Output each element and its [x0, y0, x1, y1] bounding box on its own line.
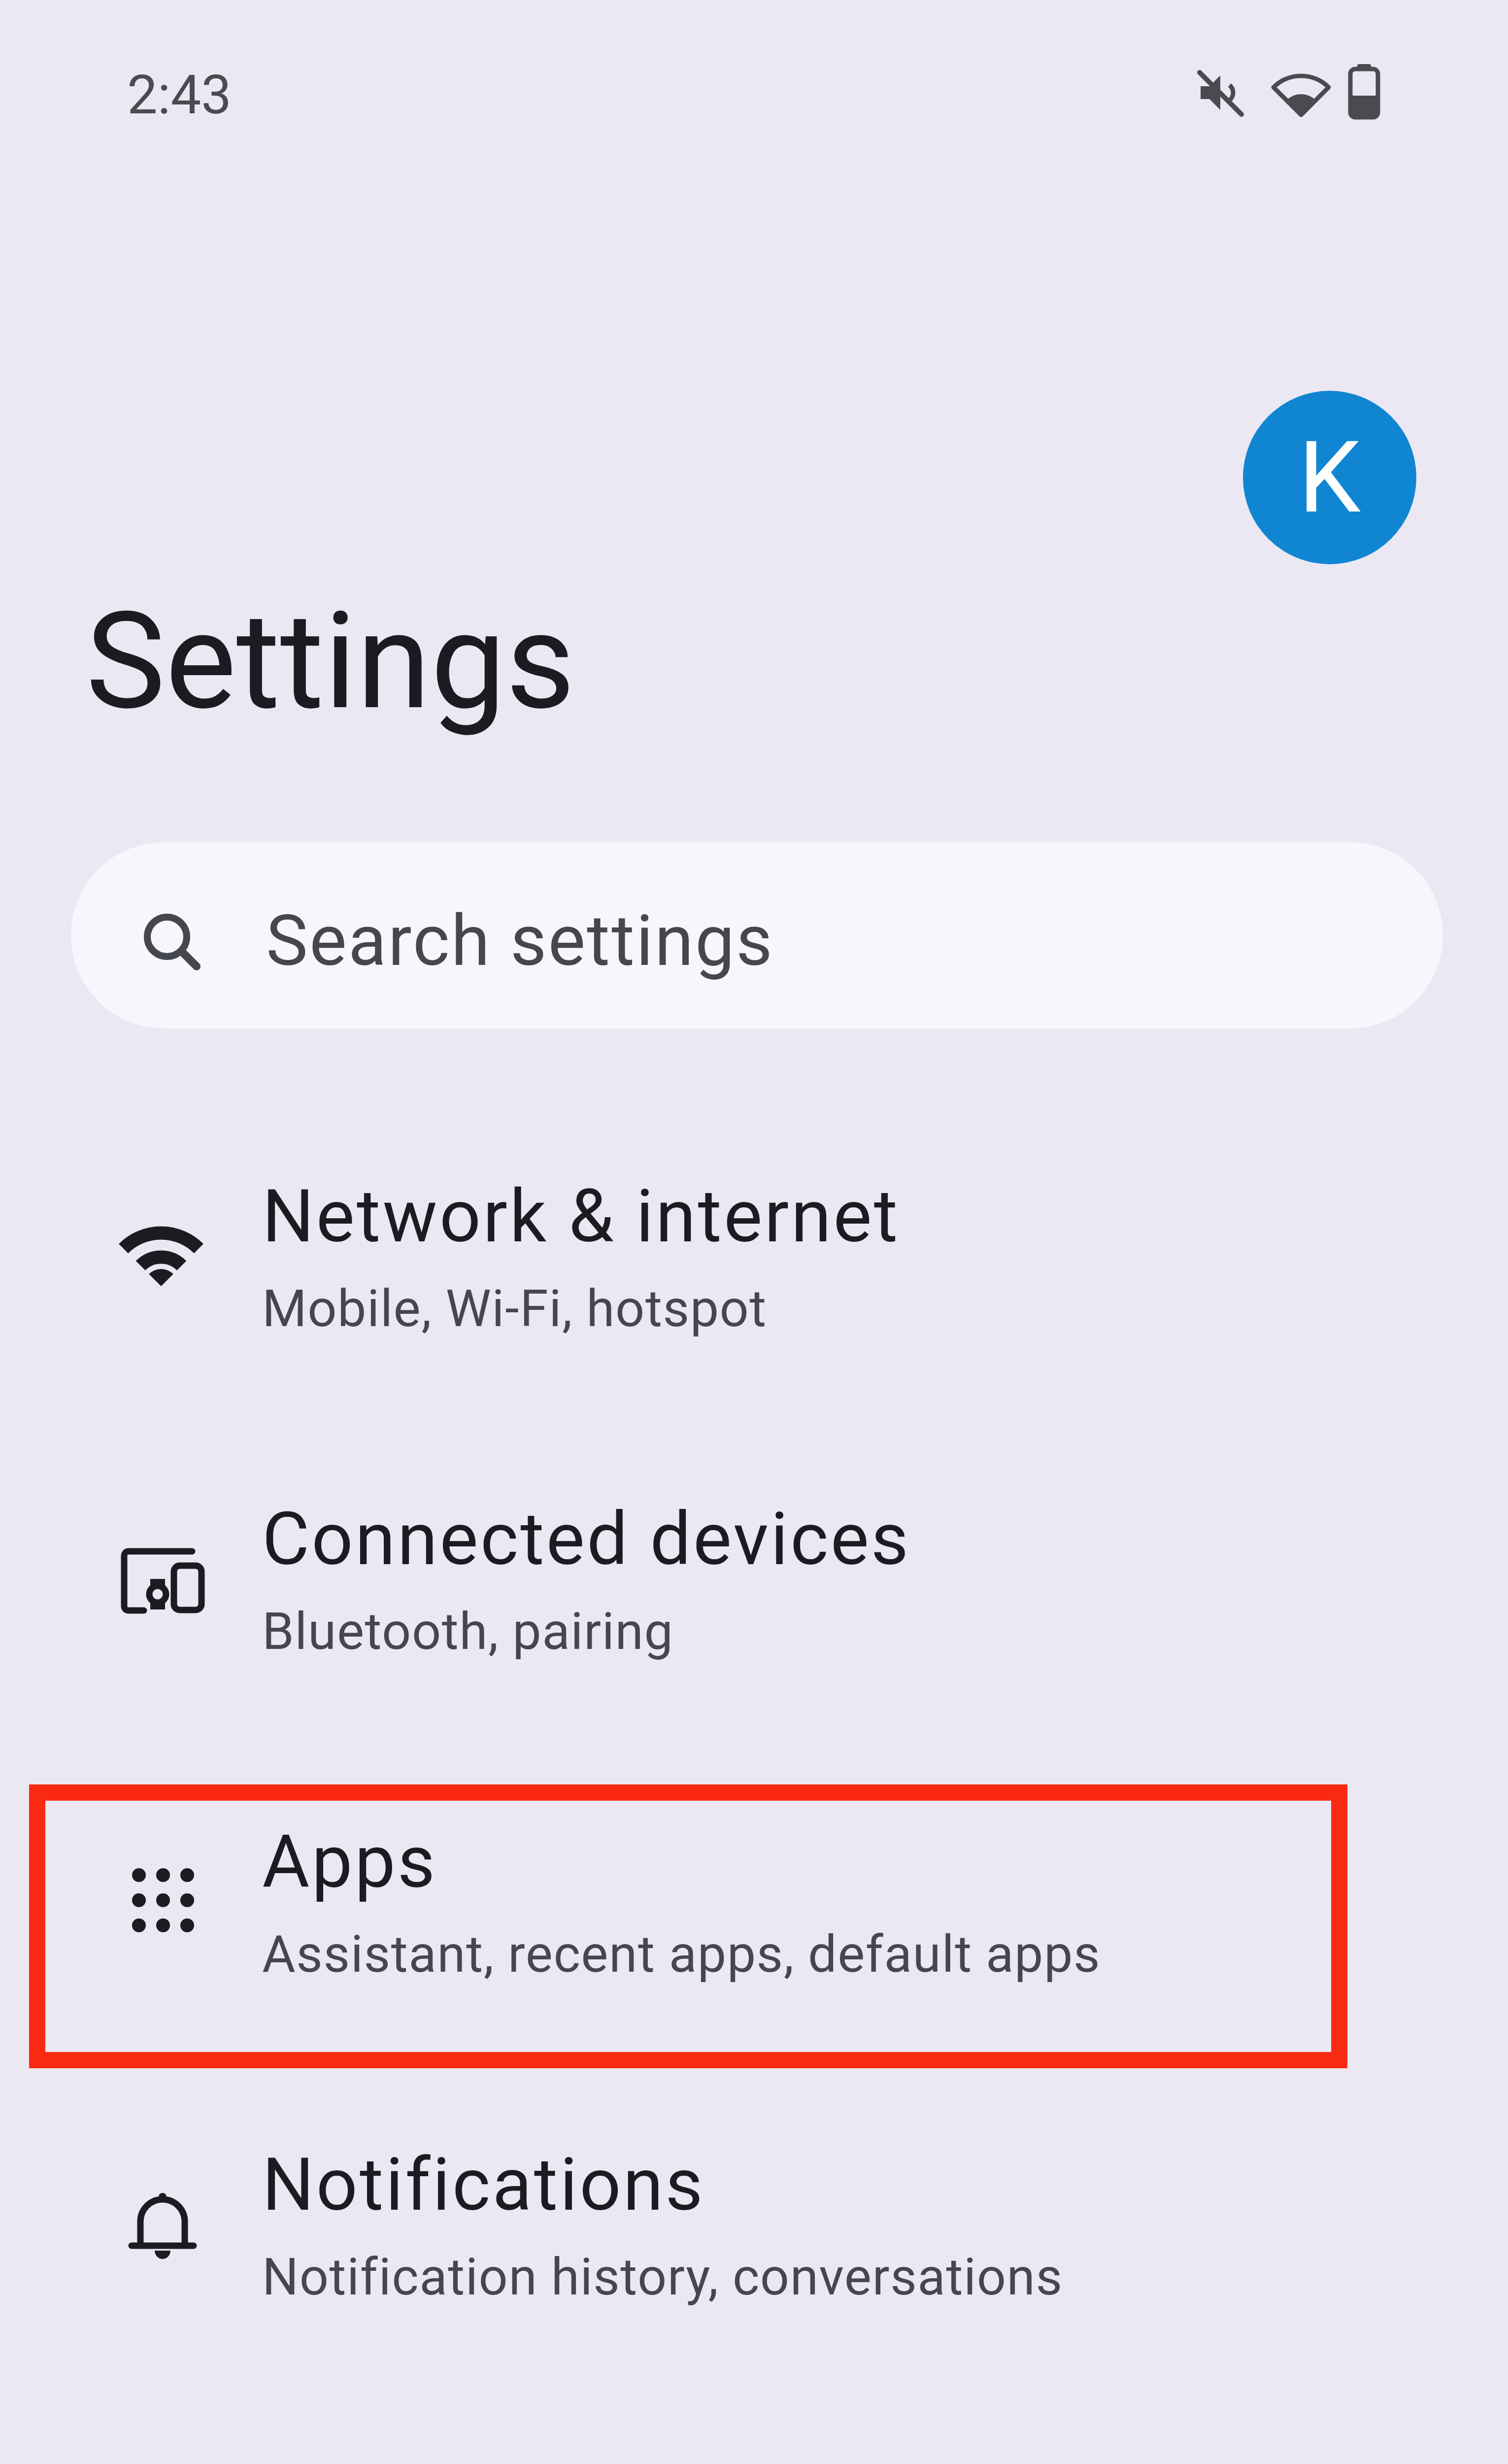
staticText: Notification history, conversations — [262, 2247, 1063, 2307]
staticText: Search settings — [266, 899, 774, 982]
button[interactable]: Search settings — [71, 842, 1443, 1028]
staticText: Assistant, recent apps, default apps — [262, 1924, 1101, 1985]
staticText: Network & internet — [262, 1174, 900, 1259]
staticText: Connected devices — [262, 1497, 911, 1582]
staticText: K — [1299, 420, 1361, 535]
button[interactable]: Notifications — [0, 2064, 1508, 2386]
button[interactable]: Apps — [0, 1741, 1508, 2063]
staticText: Settings — [86, 583, 575, 740]
staticText: Bluetooth, pairing — [262, 1602, 674, 1662]
staticText: Apps — [262, 1819, 437, 1905]
button[interactable]: Network & internet — [0, 1095, 1508, 1418]
button[interactable]: K — [1243, 391, 1416, 564]
button[interactable]: Connected devices — [0, 1418, 1508, 1741]
staticText: Notifications — [262, 2142, 705, 2227]
staticText: 2:43 — [127, 63, 232, 127]
staticText: Mobile, Wi-Fi, hotspot — [262, 1279, 767, 1339]
